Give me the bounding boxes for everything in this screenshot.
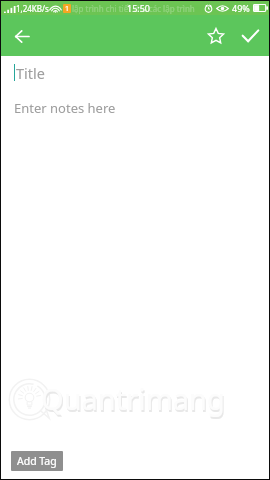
button[interactable]: Save (233, 19, 267, 53)
staticText: Enter notes here (14, 99, 116, 117)
staticText: Quantrimang (41, 379, 225, 418)
staticText: Add Tag (17, 454, 57, 468)
staticText: Title (16, 63, 45, 83)
staticText: Quantrimang (42, 381, 226, 420)
button[interactable]: Back (8, 22, 36, 50)
staticText: lập trình chi tiết cho các lập trình (72, 3, 195, 14)
staticText: 49% (232, 2, 250, 14)
staticText: 1,24KB/s (16, 3, 49, 14)
staticText: 1 (65, 4, 70, 13)
button[interactable]: Add Tag (11, 451, 63, 471)
button[interactable]: Enter notes here (1, 89, 269, 479)
button[interactable]: Favorite (199, 19, 233, 53)
button[interactable]: Title (1, 56, 269, 89)
staticText: 15:50 (127, 2, 151, 14)
